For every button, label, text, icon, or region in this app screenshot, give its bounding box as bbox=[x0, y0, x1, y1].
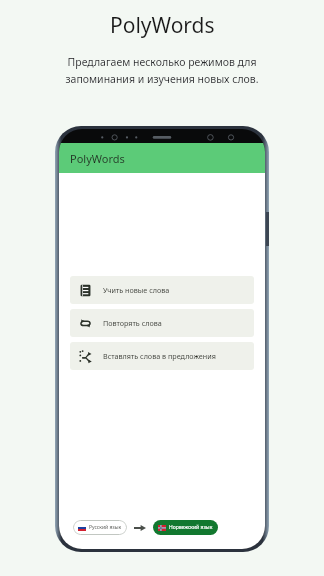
button[interactable]: Повторять слова bbox=[70, 309, 254, 337]
staticText: Вставлять слова в предложения bbox=[103, 351, 216, 361]
staticText: PolyWords bbox=[70, 151, 125, 166]
staticText: PolyWords bbox=[110, 11, 215, 40]
staticText: Русский язык bbox=[89, 524, 122, 531]
button[interactable]: Вставлять слова в предложения bbox=[70, 342, 254, 370]
button[interactable]: Русский язык bbox=[73, 520, 127, 535]
staticText: Повторять слова bbox=[103, 318, 162, 328]
staticText: Учить новые слова bbox=[103, 285, 170, 295]
button[interactable]: Учить новые слова bbox=[70, 276, 254, 304]
other: Translation direction bbox=[134, 524, 146, 532]
staticText: Норвежский язык bbox=[169, 524, 213, 531]
staticText: Предлагаем несколько режимов для запомин… bbox=[65, 55, 259, 86]
button[interactable]: Норвежский язык bbox=[153, 520, 218, 535]
